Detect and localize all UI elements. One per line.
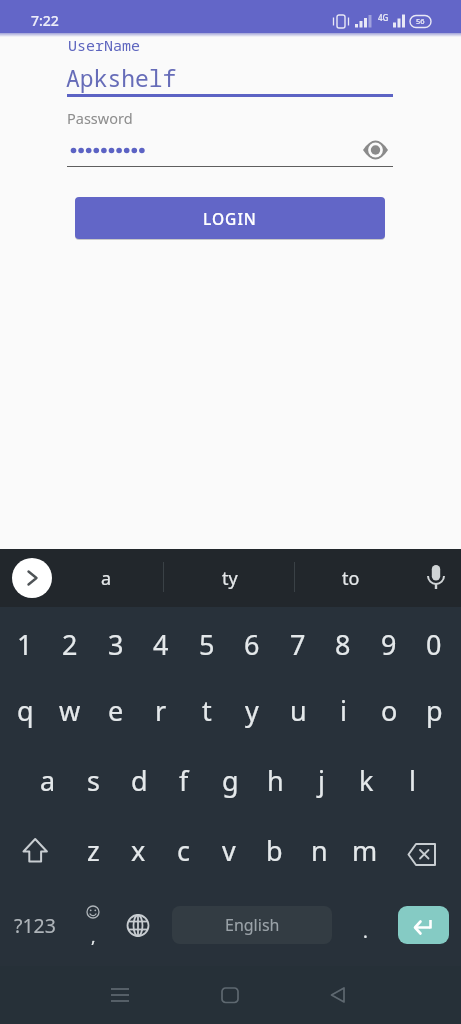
staticText: LOGIN — [203, 208, 257, 229]
staticText: w — [59, 692, 81, 729]
button[interactable]: l — [389, 749, 435, 811]
button[interactable]: o — [366, 679, 412, 741]
staticText: j — [318, 762, 325, 799]
staticText: 4G — [378, 12, 389, 23]
button[interactable]: English — [172, 906, 332, 944]
staticText: e — [108, 692, 124, 729]
button[interactable]: 8 — [320, 615, 366, 673]
staticText: Password — [67, 108, 133, 128]
staticText: a — [40, 762, 56, 799]
button[interactable]: y — [229, 679, 275, 741]
button[interactable]: 2 — [47, 615, 93, 673]
button[interactable]: a — [66, 561, 146, 595]
staticText: g — [222, 762, 239, 799]
button[interactable]: 7 — [275, 615, 321, 673]
button[interactable] — [318, 975, 358, 1015]
staticText: 9 — [381, 626, 397, 663]
button[interactable] — [12, 558, 52, 598]
button[interactable]: s — [70, 749, 116, 811]
staticText: English — [225, 914, 280, 936]
staticText: UserName — [68, 35, 141, 55]
button[interactable] — [210, 975, 250, 1015]
button[interactable]: c — [161, 819, 206, 881]
button[interactable] — [400, 830, 448, 874]
button[interactable]: 9 — [366, 615, 412, 673]
staticText: h — [267, 762, 284, 799]
staticText: d — [131, 762, 148, 799]
staticText: b — [266, 832, 283, 869]
staticText: q — [17, 692, 34, 729]
staticText: 8 — [335, 626, 351, 663]
staticText: u — [290, 692, 307, 729]
button[interactable]: LOGIN — [75, 197, 385, 239]
staticText: f — [179, 762, 189, 799]
button[interactable]: h — [252, 749, 298, 811]
staticText: i — [340, 692, 347, 729]
button[interactable]: . — [345, 911, 385, 951]
button[interactable]: m — [342, 819, 387, 881]
button[interactable] — [116, 903, 160, 947]
button[interactable] — [100, 975, 140, 1015]
staticText: 2 — [62, 626, 78, 663]
button[interactable]: ty — [185, 561, 275, 595]
staticText: Apkshelf — [66, 62, 177, 93]
button[interactable]: t — [184, 679, 230, 741]
staticText: 56 — [416, 16, 425, 26]
staticText: p — [426, 692, 443, 729]
staticText: y — [245, 692, 259, 729]
button[interactable]: v — [206, 819, 251, 881]
staticText: s — [87, 762, 100, 799]
staticText: 7 — [290, 626, 306, 663]
staticText: . — [363, 919, 368, 944]
staticText: l — [409, 762, 416, 799]
staticText: o — [381, 692, 398, 729]
button[interactable]: f — [161, 749, 207, 811]
staticText: 7:22 — [31, 11, 59, 30]
staticText: r — [155, 692, 167, 729]
button[interactable] — [12, 828, 60, 874]
staticText: , — [91, 925, 96, 948]
button[interactable]: 4 — [138, 615, 184, 673]
button[interactable]: 1 — [2, 615, 48, 673]
button[interactable]: 6 — [229, 615, 275, 673]
button[interactable]: 3 — [93, 615, 139, 673]
button[interactable] — [417, 559, 455, 597]
staticText: ?123 — [14, 912, 56, 939]
button[interactable]: a — [25, 749, 71, 811]
button[interactable]: i — [320, 679, 366, 741]
button[interactable]: j — [298, 749, 344, 811]
button[interactable]: g — [207, 749, 253, 811]
button[interactable]: 5 — [184, 615, 230, 673]
button[interactable]: z — [71, 819, 116, 881]
staticText: t — [202, 692, 212, 729]
button[interactable]: x — [116, 819, 161, 881]
staticText: 6 — [244, 626, 260, 663]
staticText: x — [131, 832, 146, 869]
staticText: ty — [222, 566, 238, 591]
button[interactable]: d — [116, 749, 162, 811]
staticText: 1 — [17, 626, 33, 663]
staticText: n — [311, 832, 328, 869]
staticText: 5 — [199, 626, 215, 663]
staticText: to — [342, 566, 360, 591]
staticText: 0 — [426, 626, 442, 663]
button[interactable] — [70, 900, 115, 950]
button[interactable]: e — [93, 679, 139, 741]
button[interactable]: k — [343, 749, 389, 811]
button[interactable]: r — [138, 679, 184, 741]
staticText: c — [177, 832, 190, 869]
button[interactable] — [398, 906, 449, 944]
staticText: z — [87, 832, 100, 869]
button[interactable]: w — [47, 679, 93, 741]
button[interactable]: b — [252, 819, 297, 881]
button[interactable]: to — [311, 561, 391, 595]
button[interactable]: p — [411, 679, 457, 741]
staticText: 3 — [108, 626, 124, 663]
button[interactable]: n — [297, 819, 342, 881]
button[interactable]: q — [2, 679, 48, 741]
button[interactable]: ?123 — [4, 905, 66, 945]
button[interactable]: u — [275, 679, 321, 741]
staticText: a — [101, 566, 112, 591]
button[interactable] — [358, 136, 394, 164]
button[interactable]: 0 — [411, 615, 457, 673]
